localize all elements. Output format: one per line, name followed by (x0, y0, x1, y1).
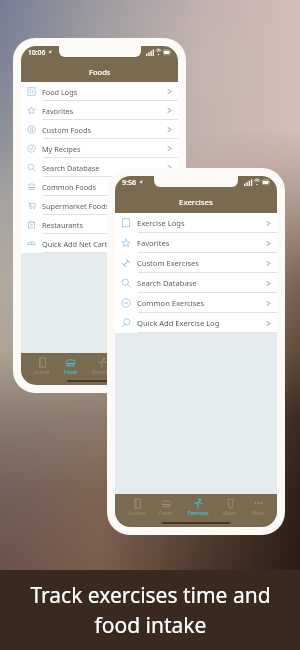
button[interactable]: Restaurants (21, 215, 178, 234)
staticText: Exercises (188, 510, 209, 517)
button[interactable]: Favorites (21, 101, 178, 120)
staticText: Track exercises time and food intake (30, 581, 271, 639)
staticText: Journal (129, 510, 145, 517)
staticText: Restaurants (42, 220, 83, 230)
button[interactable]: Water (222, 498, 238, 517)
button[interactable]: Custom Exercises (115, 253, 277, 273)
staticText: Common Foods (42, 182, 97, 192)
button[interactable]: My Recipes (21, 139, 178, 158)
staticText: Journal (34, 369, 50, 375)
staticText: Quick Add Exercise Log (137, 318, 220, 328)
button[interactable]: Exercises (187, 498, 210, 517)
staticText: Foods (159, 510, 173, 517)
staticText: Custom Exercises (137, 258, 199, 268)
button[interactable]: Search Database (21, 158, 178, 177)
staticText: My Recipes (42, 144, 81, 154)
staticText: Quick Add Net Carbs (42, 239, 113, 249)
button[interactable]: Quick Add Exercise Log (115, 313, 277, 333)
button[interactable]: Foods (63, 357, 78, 375)
button[interactable]: Journal (33, 357, 51, 375)
button[interactable]: Foods (158, 498, 174, 517)
button[interactable]: Search Database (115, 273, 277, 293)
staticText: Common Exercises (137, 298, 205, 308)
button[interactable]: Journal (128, 498, 146, 517)
staticText: Favorites (42, 106, 74, 116)
staticText: Search Database (137, 278, 197, 288)
staticText: Water (223, 510, 237, 517)
button[interactable]: Quick Add Net Carbs (21, 234, 178, 253)
button[interactable]: Supermarket Foods (21, 196, 178, 215)
staticText: Custom Foods (42, 125, 91, 135)
staticText: Favorites (137, 238, 170, 248)
button[interactable]: Custom Foods (21, 120, 178, 139)
button[interactable]: Favorites (115, 233, 277, 253)
button[interactable]: Common Foods (21, 177, 178, 196)
staticText: Foods (64, 369, 77, 375)
button[interactable]: More (251, 498, 265, 517)
staticText: Foods (89, 67, 111, 77)
staticText: More (252, 510, 264, 517)
staticText: 9:56 (122, 177, 137, 187)
staticText: Exercises (179, 197, 213, 208)
button[interactable]: Common Exercises (115, 293, 277, 313)
button[interactable]: Exercise Logs (115, 213, 277, 233)
button[interactable]: Food Logs (21, 82, 178, 101)
staticText: Supermarket Foods (42, 201, 110, 211)
staticText: Exercise Logs (137, 218, 185, 228)
staticText: Exercises (92, 369, 112, 375)
staticText: 10:06 (28, 48, 46, 57)
button[interactable]: Exercises (91, 357, 113, 375)
staticText: Search Database (42, 163, 100, 173)
staticText: Food Logs (42, 87, 78, 97)
